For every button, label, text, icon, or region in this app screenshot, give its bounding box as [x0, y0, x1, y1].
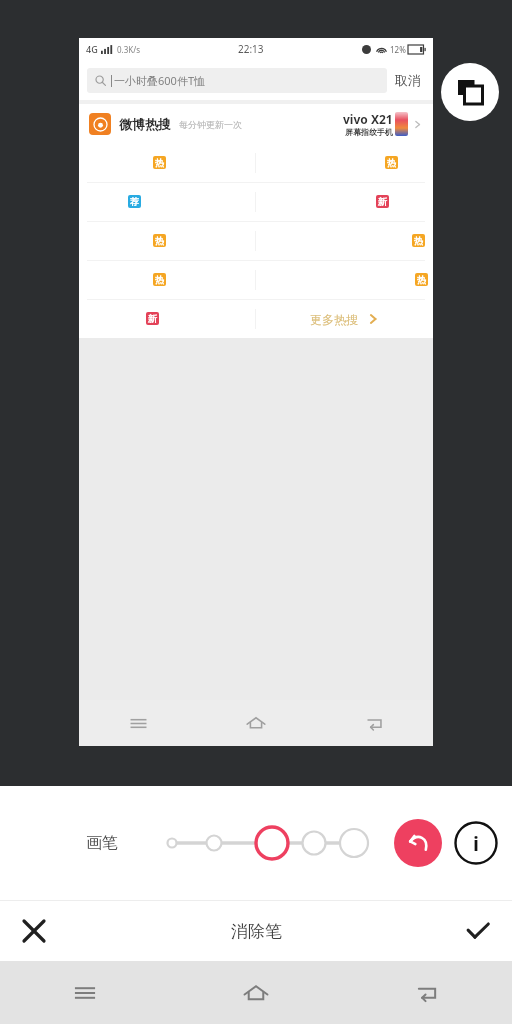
button[interactable]: Menu	[79, 700, 197, 746]
staticText: 更多热搜	[310, 312, 358, 327]
staticText: 新	[148, 313, 157, 324]
staticText: 画笔	[86, 833, 118, 853]
button[interactable]: Info	[454, 821, 498, 865]
staticText: 微博热搜	[119, 116, 171, 132]
staticText: 22:13	[238, 42, 264, 56]
button[interactable]: 热	[256, 222, 433, 260]
button[interactable]: Home	[170, 961, 341, 1024]
button[interactable]: 热	[256, 144, 433, 182]
staticText: 每分钟更新一次	[179, 119, 242, 130]
staticText: 0.3K/s	[117, 44, 141, 55]
button[interactable]: 热	[79, 144, 255, 182]
staticText: 热	[155, 157, 164, 168]
button[interactable]: 荐	[79, 183, 255, 221]
staticText: vivo X21	[343, 111, 393, 127]
button[interactable]: 新	[256, 183, 433, 221]
button[interactable]: Undo	[394, 819, 442, 867]
button[interactable]: 更多热搜	[256, 300, 433, 338]
staticText: 4G	[86, 43, 98, 55]
staticText: 热	[387, 157, 396, 168]
button[interactable]: Confirm	[458, 911, 498, 951]
button[interactable]: Cancel	[14, 911, 54, 951]
button[interactable]: 热	[256, 261, 433, 299]
button[interactable]: Brush size	[164, 821, 364, 865]
button[interactable]: Back	[341, 961, 512, 1024]
staticText: 新	[378, 196, 387, 207]
staticText: 消除笔	[231, 921, 282, 942]
button[interactable]: 热	[79, 222, 255, 260]
button[interactable]: 取消	[387, 66, 429, 94]
button[interactable]: Multi window	[441, 63, 499, 121]
staticText: 荐	[130, 196, 139, 207]
button[interactable]: Menu	[0, 961, 170, 1024]
staticText: 热	[155, 274, 164, 285]
staticText: 热	[417, 274, 426, 285]
staticText: 热	[155, 235, 164, 246]
staticText: 热	[414, 235, 423, 246]
button[interactable]: 一小时叠600件T恤	[87, 68, 387, 93]
staticText: 屏幕指纹手机	[345, 127, 393, 137]
staticText: 一小时叠600件T恤	[114, 73, 205, 88]
button[interactable]: Back	[315, 700, 433, 746]
button[interactable]: 热	[79, 261, 255, 299]
staticText: 12%	[390, 44, 406, 55]
button[interactable]: 微博热搜	[79, 104, 433, 144]
staticText: 取消	[395, 72, 421, 88]
button[interactable]: 新	[79, 300, 255, 338]
button[interactable]: Home	[197, 700, 315, 746]
staticText: i	[473, 830, 479, 857]
